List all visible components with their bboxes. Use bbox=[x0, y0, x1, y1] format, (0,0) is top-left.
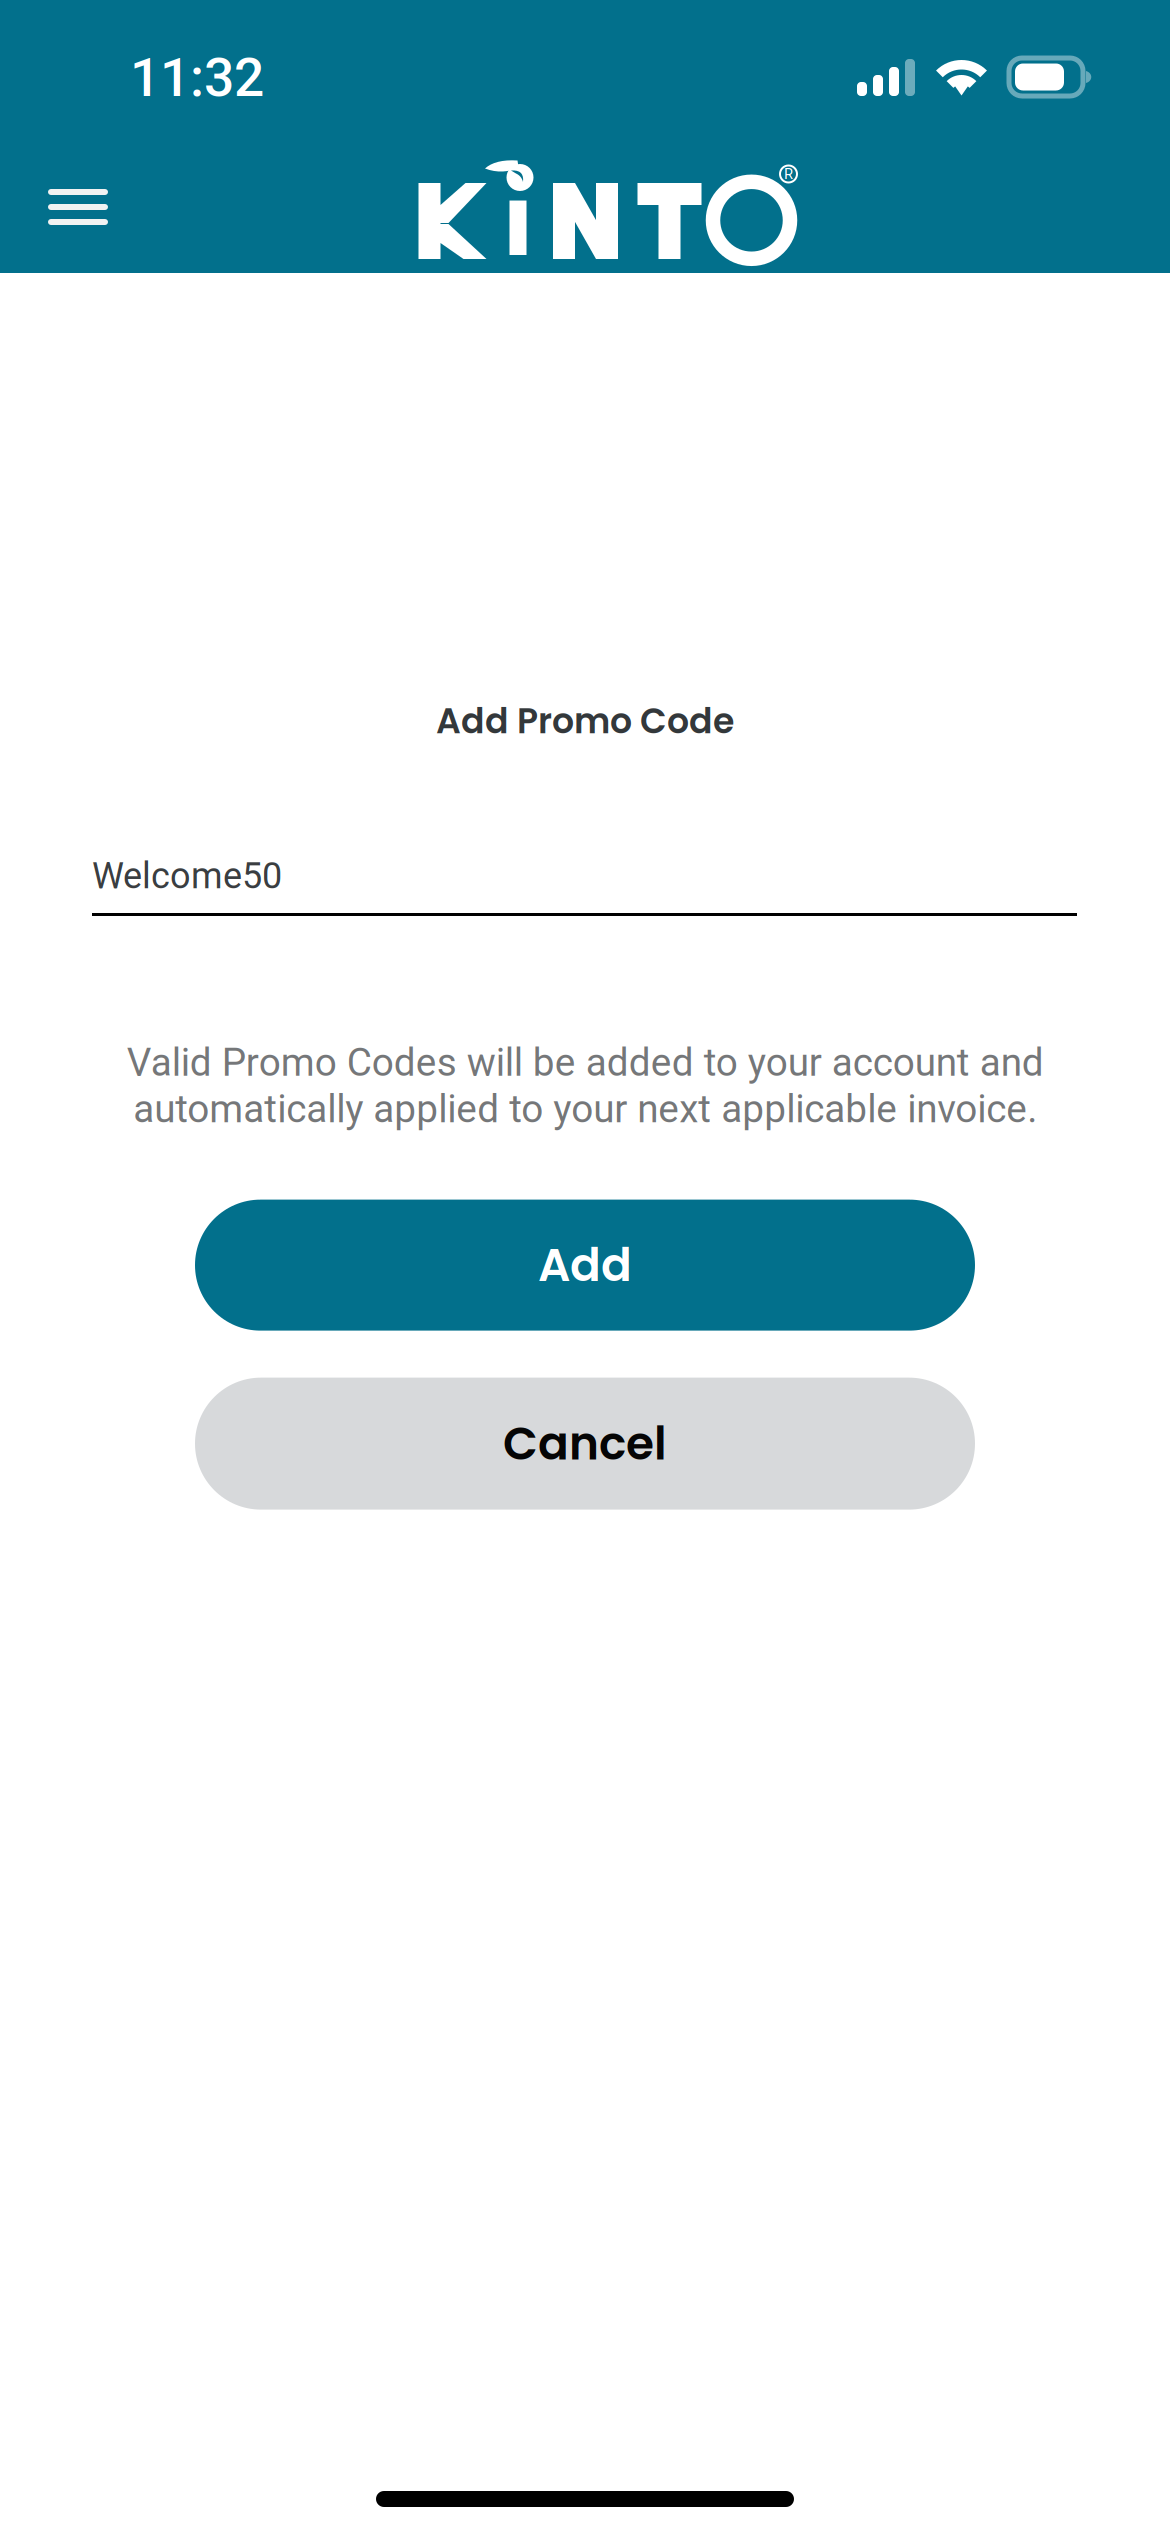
button[interactable]: Menu bbox=[0, 163, 136, 251]
staticText: Welcome50 bbox=[92, 855, 282, 897]
staticText: Cancel bbox=[503, 1412, 667, 1475]
staticText: R bbox=[784, 165, 793, 183]
button[interactable]: Add bbox=[195, 1200, 975, 1331]
staticText: Valid Promo Codes will be added to your … bbox=[126, 1040, 1043, 1132]
staticText: Add bbox=[538, 1233, 632, 1297]
staticText: Add Promo Code bbox=[436, 697, 734, 745]
button[interactable]: Cancel bbox=[195, 1378, 975, 1510]
staticText: 11:32 bbox=[130, 46, 264, 109]
